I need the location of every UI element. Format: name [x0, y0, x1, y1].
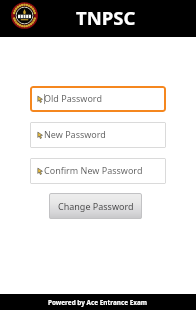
button[interactable]: TNPSC home: [11, 2, 38, 29]
button[interactable]: Change Password: [49, 193, 142, 219]
button[interactable]: Confirm New Password: [30, 158, 166, 184]
staticText: New Password: [44, 128, 106, 140]
staticText: Confirm New Password: [44, 164, 143, 176]
staticText: TNPSC: [76, 5, 136, 30]
staticText: Change Password: [58, 200, 134, 212]
button[interactable]: New Password: [30, 122, 166, 148]
button[interactable]: Old Password: [30, 86, 166, 112]
staticText: Powered by Ace Entrance Exam: [48, 298, 148, 307]
staticText: Old Password: [44, 92, 102, 104]
